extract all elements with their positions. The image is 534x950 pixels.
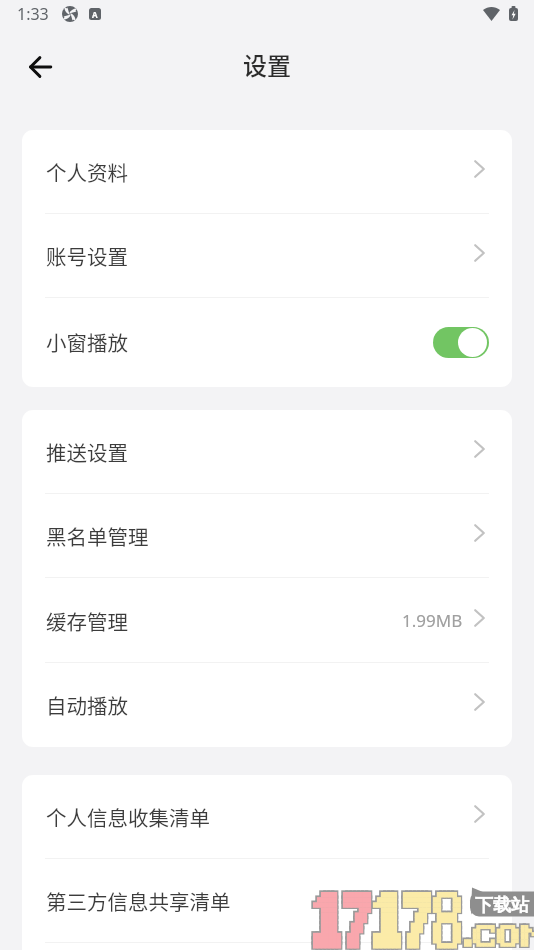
staticText: 缓存管理 — [46, 606, 128, 636]
button[interactable]: 个人资料 — [22, 130, 512, 214]
button[interactable]: 黑名单管理 — [22, 494, 512, 578]
staticText: 小窗播放 — [46, 327, 128, 357]
staticText: 1:33 — [17, 3, 49, 25]
button[interactable]: 账号设置 — [22, 214, 512, 298]
button[interactable]: 个人信息收集清单 — [22, 775, 512, 859]
staticText: 第三方信息共享清单 — [46, 886, 231, 916]
staticText: 黑名单管理 — [46, 521, 149, 551]
button[interactable]: 第三方信息共享清单 — [22, 859, 512, 943]
staticText: 个人信息收集清单 — [46, 802, 210, 832]
button[interactable]: 推送设置 — [22, 410, 512, 494]
staticText: 自动播放 — [46, 690, 128, 720]
staticText: A — [92, 9, 98, 20]
staticText: 1.99MB — [402, 609, 463, 632]
staticText: 账号设置 — [46, 241, 128, 271]
staticText: 下载站 — [475, 894, 529, 917]
button[interactable]: 自动播放设置 — [22, 943, 512, 950]
button[interactable]: 小窗播放 — [22, 298, 512, 386]
button[interactable]: 自动播放 — [22, 663, 512, 747]
staticText: 设置 — [243, 47, 291, 82]
button[interactable]: 返回 — [15, 42, 65, 92]
button[interactable]: 小窗播放开关 — [433, 327, 489, 358]
staticText: 推送设置 — [46, 437, 128, 467]
staticText: 个人资料 — [46, 157, 128, 187]
button[interactable]: 缓存管理 — [22, 578, 512, 663]
